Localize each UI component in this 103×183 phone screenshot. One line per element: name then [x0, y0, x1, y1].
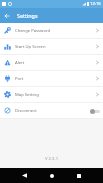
- button[interactable]: Back: [18, 169, 31, 182]
- staticText: V 2.3.1: [45, 156, 59, 162]
- button[interactable]: Alert: [0, 55, 103, 70]
- staticText: Settings: [17, 12, 38, 19]
- staticText: Start Up Screen: [15, 44, 46, 50]
- staticText: Disconnect: [15, 108, 37, 114]
- button[interactable]: Recent apps: [72, 169, 85, 182]
- staticText: Port: [15, 76, 24, 82]
- staticText: Change Password: [15, 28, 51, 34]
- button[interactable]: Change Password: [0, 23, 103, 38]
- button[interactable]: Port: [0, 71, 103, 86]
- button[interactable]: Back: [2, 11, 12, 21]
- button[interactable]: Disconnect: [0, 103, 103, 118]
- staticText: 12:16: [90, 1, 101, 7]
- button[interactable]: Map Setting: [0, 87, 103, 102]
- staticText: Alert: [15, 60, 25, 66]
- button[interactable]: Start Up Screen: [0, 39, 103, 54]
- staticText: Map Setting: [15, 92, 39, 98]
- button[interactable]: Home: [45, 169, 58, 182]
